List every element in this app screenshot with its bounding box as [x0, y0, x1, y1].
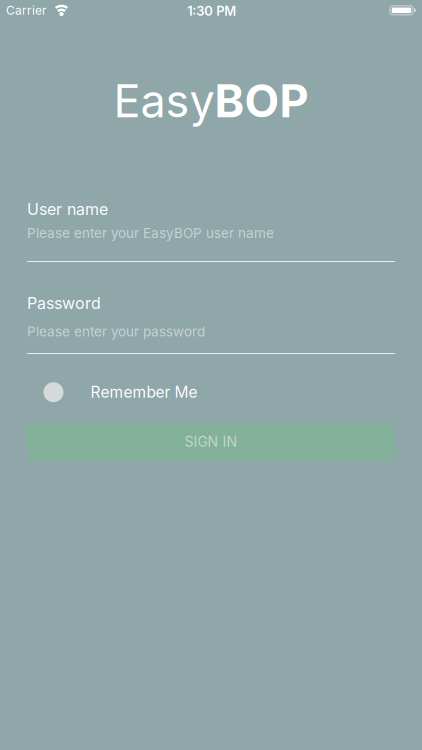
staticText: User name — [27, 200, 108, 219]
staticText: Password — [27, 294, 101, 313]
staticText: Remember Me — [90, 383, 197, 401]
button[interactable]: Remember Me — [0, 382, 422, 402]
staticText: 1:30 PM — [187, 3, 236, 19]
staticText: Please enter your EasyBOP user name — [27, 225, 274, 241]
button[interactable]: Please enter your password — [27, 312, 395, 356]
button[interactable]: Please enter your EasyBOP user name — [27, 220, 395, 264]
staticText: EasyBOP — [113, 74, 308, 128]
button[interactable]: SIGN IN — [27, 424, 394, 460]
staticText: SIGN IN — [184, 433, 237, 450]
staticText: Carrier — [6, 3, 47, 17]
staticText: Please enter your password — [27, 323, 205, 339]
